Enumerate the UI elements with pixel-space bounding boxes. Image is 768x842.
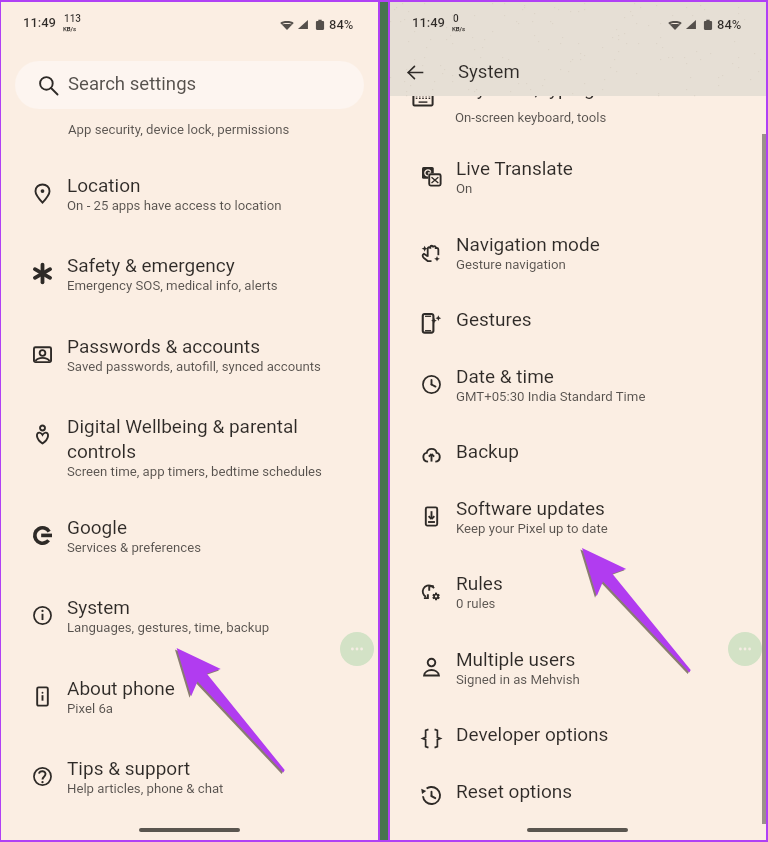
staticText: On-screen keyboard, tools [455,110,607,125]
staticText: Emergency SOS, medical info, alerts [67,278,278,293]
button[interactable]: Tips & support [1,738,378,818]
button[interactable]: Date & time [390,346,766,422]
button[interactable]: Back [391,48,439,96]
button[interactable]: Gestures [390,289,766,346]
staticText: 0 rules [456,596,496,611]
staticText: App security, device lock, permissions [68,124,290,137]
button[interactable]: Rules [390,553,766,629]
button[interactable]: Reset options [390,761,766,818]
staticText: Search settings [68,73,197,95]
staticText: 0 [453,13,459,25]
staticText: Digital Wellbeing & parental controls [67,415,298,462]
staticText: 84% [329,17,354,32]
staticText: Passwords & accounts [67,335,261,357]
staticText: GMT+05:30 India Standard Time [456,389,646,404]
button[interactable]: Search settings [15,61,364,109]
staticText: Rules [456,572,503,594]
staticText: Tips & support [67,757,191,779]
button[interactable]: Multiple users [390,629,766,705]
staticText: Backup [456,440,519,462]
staticText: Saved passwords, autofill, synced accoun… [67,359,321,374]
staticText: Screen time, app timers, bedtime schedul… [67,464,322,479]
button[interactable]: More options [340,632,374,666]
staticText: Reset options [456,780,573,802]
staticText: Keyboard, typing & tools [455,77,658,99]
staticText: Keep your Pixel up to date [456,521,608,536]
staticText: 11:49 [23,15,57,30]
staticText: About phone [67,677,175,699]
staticText: Pixel 6a [67,701,113,716]
button[interactable]: Passwords & accounts [1,316,378,396]
button[interactable]: Digital Wellbeing & parental controls [1,396,378,497]
staticText: Languages, gestures, time, backup [67,620,270,635]
staticText: 113 [64,13,82,25]
staticText: Developer options [456,723,609,745]
staticText: On [456,181,473,196]
button[interactable]: Software updates [390,478,766,554]
staticText: Gestures [456,308,532,330]
staticText: KB/s [63,25,77,32]
staticText: Software updates [456,497,605,519]
button[interactable]: Safety & emergency [1,235,378,315]
button[interactable]: Developer options [390,704,766,761]
button[interactable]: System [1,577,378,657]
staticText: Date & time [456,365,554,387]
staticText: 11:49 [412,15,446,30]
staticText: Multiple users [456,648,576,670]
button[interactable]: Location [1,155,378,235]
staticText: 84% [717,17,742,32]
staticText: Live Translate [456,157,573,179]
staticText: Signed in as Mehvish [456,672,580,687]
button[interactable]: Backup [390,421,766,478]
staticText: Safety & emergency [67,254,235,276]
staticText: Gesture navigation [456,257,566,272]
button[interactable]: More options [728,632,762,666]
staticText: KB/s [452,25,466,32]
button[interactable]: Navigation mode [390,214,766,290]
staticText: Google [67,516,127,538]
staticText: System [67,596,131,618]
staticText: On - 25 apps have access to location [67,198,282,213]
button[interactable]: About phone [1,658,378,738]
button[interactable]: Google [1,497,378,577]
staticText: Location [67,174,141,196]
staticText: Services & preferences [67,540,201,555]
button[interactable]: Live Translate [390,138,766,214]
staticText: System [458,61,520,83]
staticText: Help articles, phone & chat [67,781,224,796]
staticText: Navigation mode [456,233,600,255]
